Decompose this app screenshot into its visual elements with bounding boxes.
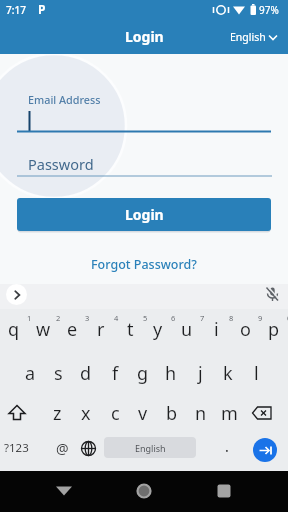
button[interactable]: z (43, 394, 71, 432)
button[interactable]: Forgot Password? (0, 254, 288, 274)
staticText: @ (56, 439, 69, 458)
staticText: e (67, 317, 78, 342)
button[interactable]: t (116, 310, 144, 348)
button[interactable]: x (72, 394, 100, 432)
staticText: 5 (143, 313, 148, 323)
button[interactable]: ?123 (2, 429, 30, 467)
staticText: o (240, 317, 251, 342)
staticText: Forgot Password? (91, 256, 197, 273)
button[interactable]: j (186, 354, 214, 392)
staticText: 6 (171, 313, 176, 323)
button[interactable]: g (129, 354, 157, 392)
button[interactable]: Email Address (0, 88, 288, 136)
button[interactable]: . (213, 427, 241, 465)
staticText: h (165, 361, 177, 386)
button[interactable] (6, 404, 28, 422)
button[interactable]: n (187, 394, 215, 432)
staticText: v (138, 401, 148, 426)
button[interactable]: v (129, 394, 157, 432)
staticText: g (137, 361, 149, 386)
button[interactable]: Password (0, 152, 288, 180)
staticText: r (97, 317, 105, 342)
staticText: u (181, 317, 193, 342)
staticText: Login (125, 27, 164, 46)
button[interactable] (212, 479, 236, 503)
staticText: b (166, 401, 178, 426)
staticText: t (127, 317, 134, 342)
button[interactable]: q (0, 310, 28, 348)
staticText: l (254, 361, 259, 386)
staticText: 8 (229, 313, 234, 323)
staticText: z (53, 401, 62, 426)
staticText: Email Address (28, 92, 101, 107)
staticText: d (80, 361, 92, 386)
button[interactable]: r (87, 310, 115, 348)
staticText: 7:17 (6, 3, 26, 17)
button[interactable]: English (104, 437, 196, 458)
button[interactable] (80, 440, 97, 457)
staticText: c (111, 401, 120, 426)
button[interactable] (6, 284, 27, 305)
button[interactable] (132, 479, 156, 503)
staticText: f (112, 361, 119, 386)
button[interactable] (52, 479, 76, 503)
staticText: x (81, 401, 91, 426)
button[interactable]: Login (17, 198, 271, 231)
button[interactable] (251, 406, 273, 421)
staticText: English (135, 442, 166, 454)
staticText: 1 (27, 313, 32, 323)
staticText: i (214, 317, 219, 342)
button[interactable]: k (214, 354, 242, 392)
staticText: ?123 (4, 440, 29, 456)
button[interactable]: p (260, 310, 288, 348)
staticText: Password (28, 154, 94, 174)
button[interactable]: m (215, 394, 243, 432)
button[interactable]: e (58, 310, 86, 348)
staticText: 3 (85, 313, 90, 323)
button[interactable]: f (101, 354, 129, 392)
staticText: 2 (56, 313, 61, 323)
staticText: j (198, 361, 203, 386)
button[interactable]: i (202, 310, 230, 348)
staticText: a (25, 361, 36, 386)
staticText: Login (125, 205, 164, 224)
button[interactable]: a (16, 354, 44, 392)
staticText: . (225, 437, 229, 456)
staticText: English (230, 30, 266, 44)
button[interactable]: b (158, 394, 186, 432)
button[interactable] (253, 438, 277, 462)
button[interactable]: l (242, 354, 270, 392)
staticText: 0 (287, 313, 288, 323)
button[interactable]: c (101, 394, 129, 432)
staticText: p (268, 317, 280, 342)
button[interactable]: w (29, 310, 57, 348)
button[interactable]: English (230, 30, 280, 44)
button[interactable]: o (231, 310, 259, 348)
staticText: m (221, 401, 238, 426)
staticText: 7 (200, 313, 205, 323)
staticText: q (8, 317, 20, 342)
button[interactable]: s (44, 354, 72, 392)
button[interactable] (264, 286, 281, 303)
staticText: P (38, 1, 46, 17)
staticText: 9 (258, 313, 263, 323)
staticText: y (153, 317, 163, 342)
staticText: w (36, 317, 51, 342)
staticText: 4 (114, 313, 119, 323)
button[interactable]: h (157, 354, 185, 392)
button[interactable]: d (72, 354, 100, 392)
staticText: n (195, 401, 207, 426)
staticText: k (223, 361, 233, 386)
staticText: s (54, 361, 63, 386)
button[interactable]: y (144, 310, 172, 348)
button[interactable]: u (173, 310, 201, 348)
button[interactable]: @ (48, 429, 76, 467)
staticText: 97% (259, 3, 279, 17)
